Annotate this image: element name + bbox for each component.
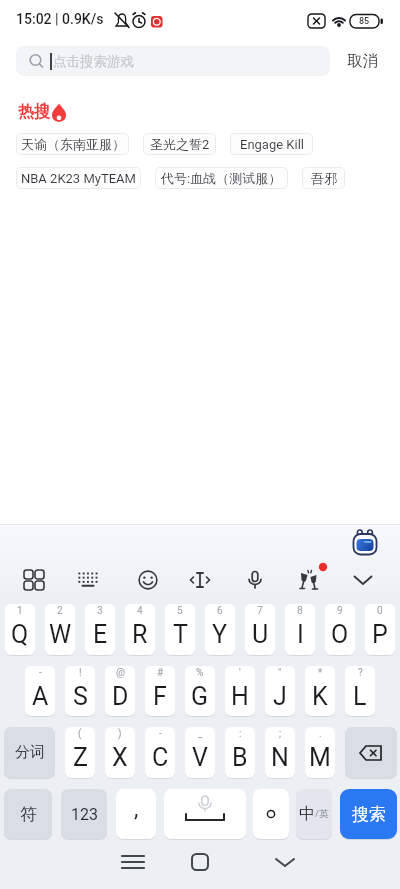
button[interactable]: 搜索 [340, 789, 397, 839]
button[interactable]: 0 [365, 604, 395, 655]
staticText: 搜索 [352, 804, 386, 825]
staticText: 代号:血战（测试服） [161, 170, 282, 186]
button[interactable]: 9 [325, 604, 355, 655]
staticText: @ [116, 667, 125, 679]
button[interactable]: * [305, 666, 335, 716]
staticText: ! [79, 667, 82, 679]
button[interactable]: : [225, 727, 255, 778]
button[interactable]: ; [265, 727, 295, 778]
button[interactable]: 吾邪 [303, 168, 344, 188]
staticText: C [152, 743, 169, 772]
button[interactable] [346, 563, 380, 597]
button[interactable]: @ [105, 666, 135, 716]
button[interactable] [183, 563, 217, 597]
button[interactable]: NBA 2K23 MyTEAM [17, 168, 140, 188]
button[interactable]: . [305, 727, 335, 778]
button[interactable]: Engage Kill [231, 134, 312, 154]
button[interactable]: 6 [205, 604, 235, 655]
staticText: T [173, 620, 188, 649]
staticText: 85 [359, 16, 370, 27]
button[interactable]: % [185, 666, 215, 716]
button[interactable]: _ [185, 727, 215, 778]
button[interactable] [17, 563, 51, 597]
staticText: ; [279, 728, 282, 740]
staticText: - [159, 728, 162, 740]
staticText: ' [239, 667, 241, 679]
button[interactable]: 天谕（东南亚服） [17, 134, 128, 154]
button[interactable]: ( [65, 727, 95, 778]
staticText: 0 [377, 605, 383, 617]
button[interactable]: ! [65, 666, 95, 716]
staticText: Z [73, 743, 88, 772]
staticText: 4 [137, 605, 143, 617]
button[interactable]: - [145, 727, 175, 778]
button[interactable] [253, 789, 289, 839]
staticText: 6 [217, 605, 223, 617]
staticText: ( [78, 728, 82, 740]
staticText: G [191, 682, 209, 711]
button[interactable]: # [145, 666, 175, 716]
button[interactable]: 中 [296, 789, 332, 839]
staticText: D [112, 682, 129, 711]
staticText: V [192, 743, 208, 772]
button[interactable]: 123 [61, 789, 107, 839]
staticText: 分词 [15, 743, 45, 762]
staticText: 中 [299, 804, 315, 824]
staticText: ) [118, 728, 122, 740]
staticText: # [157, 667, 164, 679]
button[interactable]: 8 [285, 604, 315, 655]
button[interactable]: 4 [125, 604, 155, 655]
staticText: A [32, 682, 49, 711]
staticText: 15:02 | 0.9K/s [16, 11, 104, 27]
staticText: 吾邪 [311, 170, 337, 186]
button[interactable]: 圣光之誓2 [144, 134, 215, 154]
staticText: 圣光之誓2 [150, 136, 210, 152]
staticText: ? [358, 667, 363, 679]
button[interactable] [238, 563, 272, 597]
staticText: O [331, 620, 349, 649]
button[interactable]: 7 [245, 604, 275, 655]
button[interactable]: 代号:血战（测试服） [156, 168, 287, 188]
button[interactable] [352, 528, 378, 556]
staticText: J [273, 682, 287, 711]
staticText: B [232, 743, 248, 772]
staticText: 1 [17, 605, 23, 617]
button[interactable]: ) [105, 727, 135, 778]
button[interactable]: 符 [4, 789, 52, 839]
button[interactable]: 分词 [4, 727, 55, 778]
button[interactable] [131, 563, 165, 597]
staticText: * [318, 667, 323, 679]
staticText: Q [11, 620, 29, 649]
button[interactable] [292, 563, 326, 597]
button[interactable]: " [265, 666, 295, 716]
button[interactable] [71, 563, 105, 597]
button[interactable]: - [25, 666, 55, 716]
staticText: K [312, 682, 328, 711]
button[interactable]: ? [345, 666, 375, 716]
staticText: 8 [297, 605, 303, 617]
staticText: W [49, 620, 72, 649]
button[interactable]: 5 [165, 604, 195, 655]
staticText: R [132, 620, 148, 649]
button[interactable]: , [116, 789, 156, 839]
staticText: N [271, 743, 289, 772]
staticText: Engage Kill [240, 137, 304, 152]
staticText: % [196, 667, 204, 679]
button[interactable] [164, 789, 246, 839]
button[interactable]: 2 [45, 604, 75, 655]
staticText: P [372, 620, 388, 649]
staticText: 123 [71, 805, 98, 824]
button[interactable]: ' [225, 666, 255, 716]
button[interactable] [345, 727, 397, 778]
button[interactable]: 点击搜索游戏 [16, 46, 330, 76]
staticText: L [353, 682, 367, 711]
staticText: - [39, 667, 42, 679]
staticText: /英 [315, 808, 329, 820]
staticText: 点击搜索游戏 [53, 53, 134, 70]
button[interactable]: 取消 [340, 46, 384, 76]
staticText: : [239, 728, 242, 740]
button[interactable]: 1 [5, 604, 35, 655]
staticText: X [112, 743, 128, 772]
button[interactable]: 3 [85, 604, 115, 655]
staticText: 9 [337, 605, 343, 617]
